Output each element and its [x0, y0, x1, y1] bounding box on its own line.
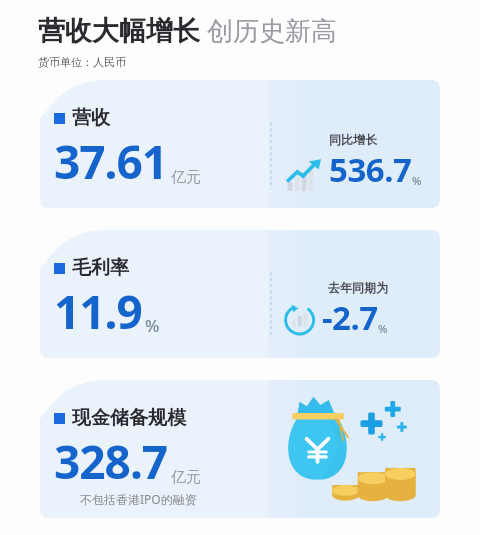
staticText: 现金储备规模	[72, 406, 186, 430]
staticText: 11.9	[54, 280, 142, 343]
staticText: 同比增长	[329, 132, 377, 147]
staticText: 创历史新高	[207, 15, 337, 48]
staticText: 亿元	[171, 168, 201, 187]
staticText: 货币单位：人民币	[38, 55, 126, 69]
staticText: 不包括香港IPO的融资	[80, 491, 197, 507]
staticText: -2.7	[322, 295, 378, 340]
staticText: 37.61	[54, 130, 168, 193]
button[interactable]: 营收	[40, 80, 440, 208]
button[interactable]: 现金储备规模	[40, 380, 440, 518]
staticText: 328.7	[54, 430, 168, 493]
staticText: 亿元	[171, 468, 201, 487]
other: Cash reserves	[278, 390, 430, 502]
staticText: 营收大幅增长	[38, 14, 200, 48]
button[interactable]: 毛利率	[40, 230, 440, 358]
staticText: %	[412, 173, 422, 188]
staticText: %	[145, 314, 160, 337]
staticText: 去年同期为	[328, 280, 388, 295]
staticText: 毛利率	[72, 256, 129, 280]
other: Last year comparison	[282, 300, 322, 340]
staticText: 营收	[72, 106, 110, 130]
staticText: 536.7	[329, 147, 412, 192]
other: Growth trend	[286, 158, 324, 192]
staticText: %	[378, 321, 388, 336]
